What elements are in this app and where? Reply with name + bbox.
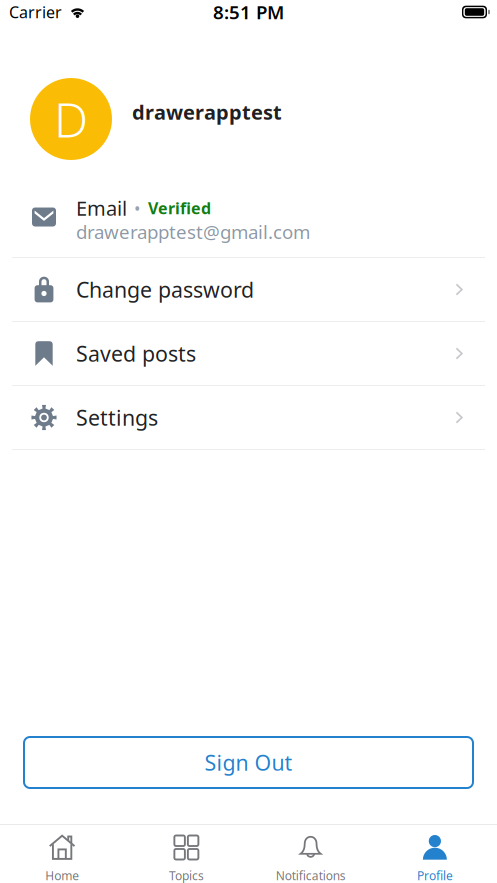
staticText: drawerapptest@gmail.com — [76, 219, 310, 244]
button[interactable]: Change password — [0, 258, 497, 321]
staticText: Profile — [417, 868, 453, 883]
staticText: drawerapptest — [132, 99, 282, 125]
staticText: Settings — [76, 403, 158, 432]
button[interactable]: Sign Out — [24, 737, 473, 788]
button[interactable]: Email — [0, 187, 497, 257]
staticText: Sign Out — [204, 748, 292, 777]
button[interactable]: Saved posts — [0, 322, 497, 385]
staticText: Saved posts — [76, 339, 196, 368]
button[interactable]: Home — [0, 824, 124, 883]
staticText: Carrier — [9, 1, 62, 23]
staticText: Home — [45, 868, 79, 883]
staticText: Notifications — [276, 868, 346, 883]
staticText: Email — [76, 195, 127, 221]
staticText: • — [134, 197, 141, 220]
button[interactable]: Topics — [124, 824, 248, 883]
staticText: Change password — [76, 275, 254, 304]
staticText: 8:51 PM — [213, 0, 284, 24]
button[interactable]: Notifications — [248, 824, 373, 883]
staticText: D — [54, 87, 88, 151]
button[interactable]: Settings — [0, 386, 497, 449]
button[interactable]: Profile — [373, 824, 497, 883]
staticText: Verified — [148, 197, 211, 219]
staticText: Topics — [169, 868, 204, 883]
